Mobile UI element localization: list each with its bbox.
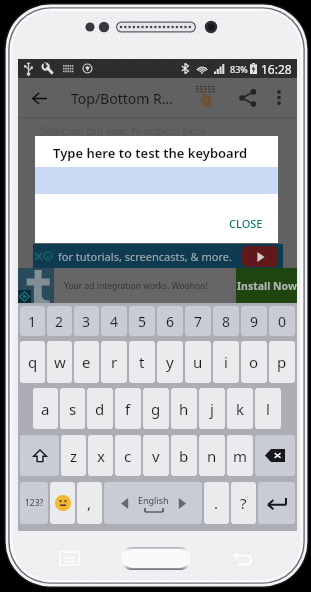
staticText: i xyxy=(224,352,228,372)
button[interactable]: 4 xyxy=(101,306,127,336)
button[interactable]: 0 xyxy=(269,306,295,336)
staticText: u xyxy=(193,352,203,372)
button[interactable]: e xyxy=(74,341,99,383)
button[interactable]: q xyxy=(20,341,45,383)
button[interactable]: i xyxy=(213,341,239,383)
button[interactable]: t xyxy=(129,341,155,383)
staticText: j xyxy=(210,399,214,419)
button[interactable]: 9 xyxy=(241,306,267,336)
staticText: t xyxy=(139,352,145,372)
staticText: 4 xyxy=(110,312,119,331)
staticText: v xyxy=(152,446,160,466)
button[interactable]: x xyxy=(88,435,113,476)
button[interactable]: Shift xyxy=(20,435,59,476)
button[interactable]: ? xyxy=(231,482,256,524)
staticText: Type here to test the keyboard xyxy=(53,144,248,162)
button[interactable]: 7 xyxy=(185,306,211,336)
staticText: q xyxy=(28,352,38,372)
staticText: p xyxy=(277,352,287,372)
staticText: Top/Bottom R... xyxy=(71,89,173,108)
staticText: s xyxy=(69,399,77,419)
button[interactable]: 5 xyxy=(129,306,155,336)
button[interactable]: n xyxy=(199,435,225,476)
button[interactable]: c xyxy=(115,435,141,476)
staticText: English xyxy=(138,494,169,506)
button[interactable]: a xyxy=(33,388,58,429)
button[interactable]: s xyxy=(60,388,85,429)
button[interactable]: z xyxy=(61,435,86,476)
staticText: 16:28 xyxy=(261,61,292,77)
button[interactable]: Advertisement xyxy=(33,244,283,268)
staticText: 3 xyxy=(82,312,91,331)
staticText: 1 xyxy=(28,312,37,331)
button[interactable]: Show keyboard xyxy=(191,82,219,110)
staticText: 0 xyxy=(278,312,287,331)
button[interactable]: Home xyxy=(121,547,191,570)
staticText: Selected tag row: Numbers here xyxy=(40,123,206,138)
button[interactable]: Enter xyxy=(258,482,295,524)
button[interactable]: p xyxy=(269,341,295,383)
button[interactable]: h xyxy=(171,388,197,429)
staticText: x xyxy=(97,446,105,466)
staticText: w xyxy=(54,352,66,372)
staticText: e xyxy=(82,352,91,372)
button[interactable]: Share xyxy=(235,85,261,111)
button[interactable]: Install Now xyxy=(236,268,297,303)
staticText: b xyxy=(179,446,189,466)
button[interactable]: b xyxy=(171,435,197,476)
staticText: f xyxy=(125,399,131,419)
staticText: l xyxy=(266,399,270,419)
button[interactable]: v xyxy=(143,435,169,476)
staticText: CLOSE xyxy=(229,216,263,231)
staticText: k xyxy=(236,399,245,419)
button[interactable]: l xyxy=(255,388,281,429)
button[interactable]: Backspace xyxy=(255,435,295,476)
button[interactable]: 6 xyxy=(157,306,183,336)
staticText: m xyxy=(233,446,248,466)
button[interactable]: u xyxy=(185,341,211,383)
button[interactable]: y xyxy=(157,341,183,383)
button[interactable]: r xyxy=(101,341,127,383)
staticText: ? xyxy=(240,493,247,513)
button[interactable]: . xyxy=(204,482,229,524)
button[interactable]: 8 xyxy=(213,306,239,336)
button[interactable]: Back xyxy=(25,84,53,112)
button[interactable]: CLOSE xyxy=(222,211,270,235)
button[interactable]: 3 xyxy=(74,306,99,336)
staticText: Hint text xyxy=(40,151,81,165)
button[interactable]: m xyxy=(227,435,253,476)
staticText: 8 xyxy=(222,312,231,331)
staticText: o xyxy=(249,352,259,372)
button[interactable]: More options xyxy=(267,85,291,109)
button[interactable]: , xyxy=(77,482,102,524)
button[interactable]: f xyxy=(115,388,141,429)
button[interactable]: g xyxy=(143,388,169,429)
button[interactable]: Space xyxy=(104,482,202,524)
button[interactable]: d xyxy=(87,388,113,429)
staticText: h xyxy=(179,399,189,419)
button[interactable]: o xyxy=(241,341,267,383)
staticText: , xyxy=(87,493,92,513)
staticText: n xyxy=(207,446,217,466)
button[interactable]: 1 xyxy=(20,306,45,336)
staticText: 7 xyxy=(194,312,203,331)
staticText: 2 xyxy=(55,312,64,331)
button[interactable]: Emoji xyxy=(50,482,75,524)
staticText: 9 xyxy=(250,312,259,331)
button[interactable]: Back xyxy=(225,545,259,571)
button[interactable]: w xyxy=(47,341,72,383)
staticText: . xyxy=(214,493,219,513)
staticText: r xyxy=(111,352,118,372)
staticText: Your ad integration works. Woohoo! xyxy=(64,280,208,292)
button[interactable]: k xyxy=(227,388,253,429)
button[interactable]: 2 xyxy=(47,306,72,336)
button[interactable]: Recents xyxy=(52,545,86,571)
staticText: Install Now xyxy=(237,279,297,293)
staticText: g xyxy=(151,399,161,419)
button[interactable]: 123? xyxy=(20,482,48,524)
staticText: d xyxy=(95,399,105,419)
staticText: 6 xyxy=(166,312,175,331)
staticText: c xyxy=(124,446,132,466)
button[interactable]: j xyxy=(199,388,225,429)
staticText: 123? xyxy=(25,497,44,509)
